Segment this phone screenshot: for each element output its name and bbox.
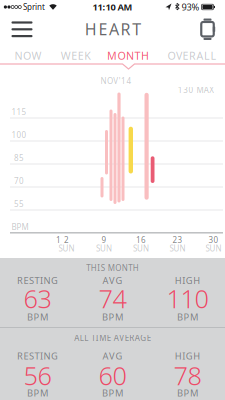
staticText: 56	[23, 359, 51, 392]
staticText: BPM	[27, 311, 48, 323]
staticText: Sprint	[23, 2, 45, 12]
staticText: HIGH	[175, 274, 200, 287]
staticText: 63	[23, 282, 51, 315]
button[interactable]: OVERALL	[163, 44, 220, 67]
staticText: SUN	[133, 243, 149, 254]
button[interactable]: NOW	[10, 44, 45, 67]
staticText: BPM	[177, 387, 198, 399]
staticText: 60	[98, 359, 126, 392]
staticText: SUN	[169, 243, 185, 254]
staticText: SUN	[205, 243, 221, 254]
staticText: 9	[101, 235, 106, 245]
staticText: BPM	[102, 387, 123, 399]
staticText: HIGH	[175, 350, 200, 362]
staticText: AVG	[102, 350, 122, 362]
staticText: 100	[11, 130, 26, 140]
staticText: 2	[64, 235, 69, 245]
staticText: BPM	[11, 222, 28, 232]
staticText: BPM	[102, 311, 123, 323]
staticText: 93%	[181, 1, 199, 13]
staticText: 85	[14, 153, 24, 163]
staticText: 70	[14, 176, 24, 186]
staticText: SUN	[58, 243, 74, 254]
button[interactable]: Menu	[11, 19, 33, 39]
staticText: 23	[172, 235, 182, 245]
button[interactable]: WEEK	[57, 44, 95, 67]
staticText: OVERALL	[167, 48, 216, 63]
staticText: 16	[136, 235, 146, 245]
staticText: RESTING	[17, 350, 58, 362]
button[interactable]: Devices	[199, 17, 217, 41]
staticText: SUN	[96, 243, 112, 254]
staticText: 130 MAX	[178, 85, 214, 95]
staticText: 115	[11, 107, 26, 117]
staticText: ALL TIME AVERAGE	[74, 333, 151, 343]
staticText: WEEK	[61, 48, 91, 63]
staticText: BPM	[177, 311, 198, 323]
staticText: MONTH	[107, 48, 149, 63]
staticText: 30	[208, 235, 218, 245]
staticText: HEART	[85, 18, 141, 40]
staticText: 74	[98, 282, 126, 315]
button[interactable]: MONTH	[103, 44, 153, 67]
staticText: AVG	[102, 274, 122, 287]
staticText: BPM	[27, 387, 48, 399]
staticText: 55	[14, 199, 24, 209]
staticText: RESTING	[17, 274, 58, 287]
staticText: 110	[166, 282, 208, 315]
staticText: THIS MONTH	[86, 263, 139, 273]
staticText: 11:10 AM	[92, 1, 132, 13]
staticText: 78	[173, 359, 201, 392]
staticText: NOW	[14, 48, 41, 63]
staticText: 1	[56, 235, 61, 245]
staticText: NOV'14	[100, 76, 131, 86]
